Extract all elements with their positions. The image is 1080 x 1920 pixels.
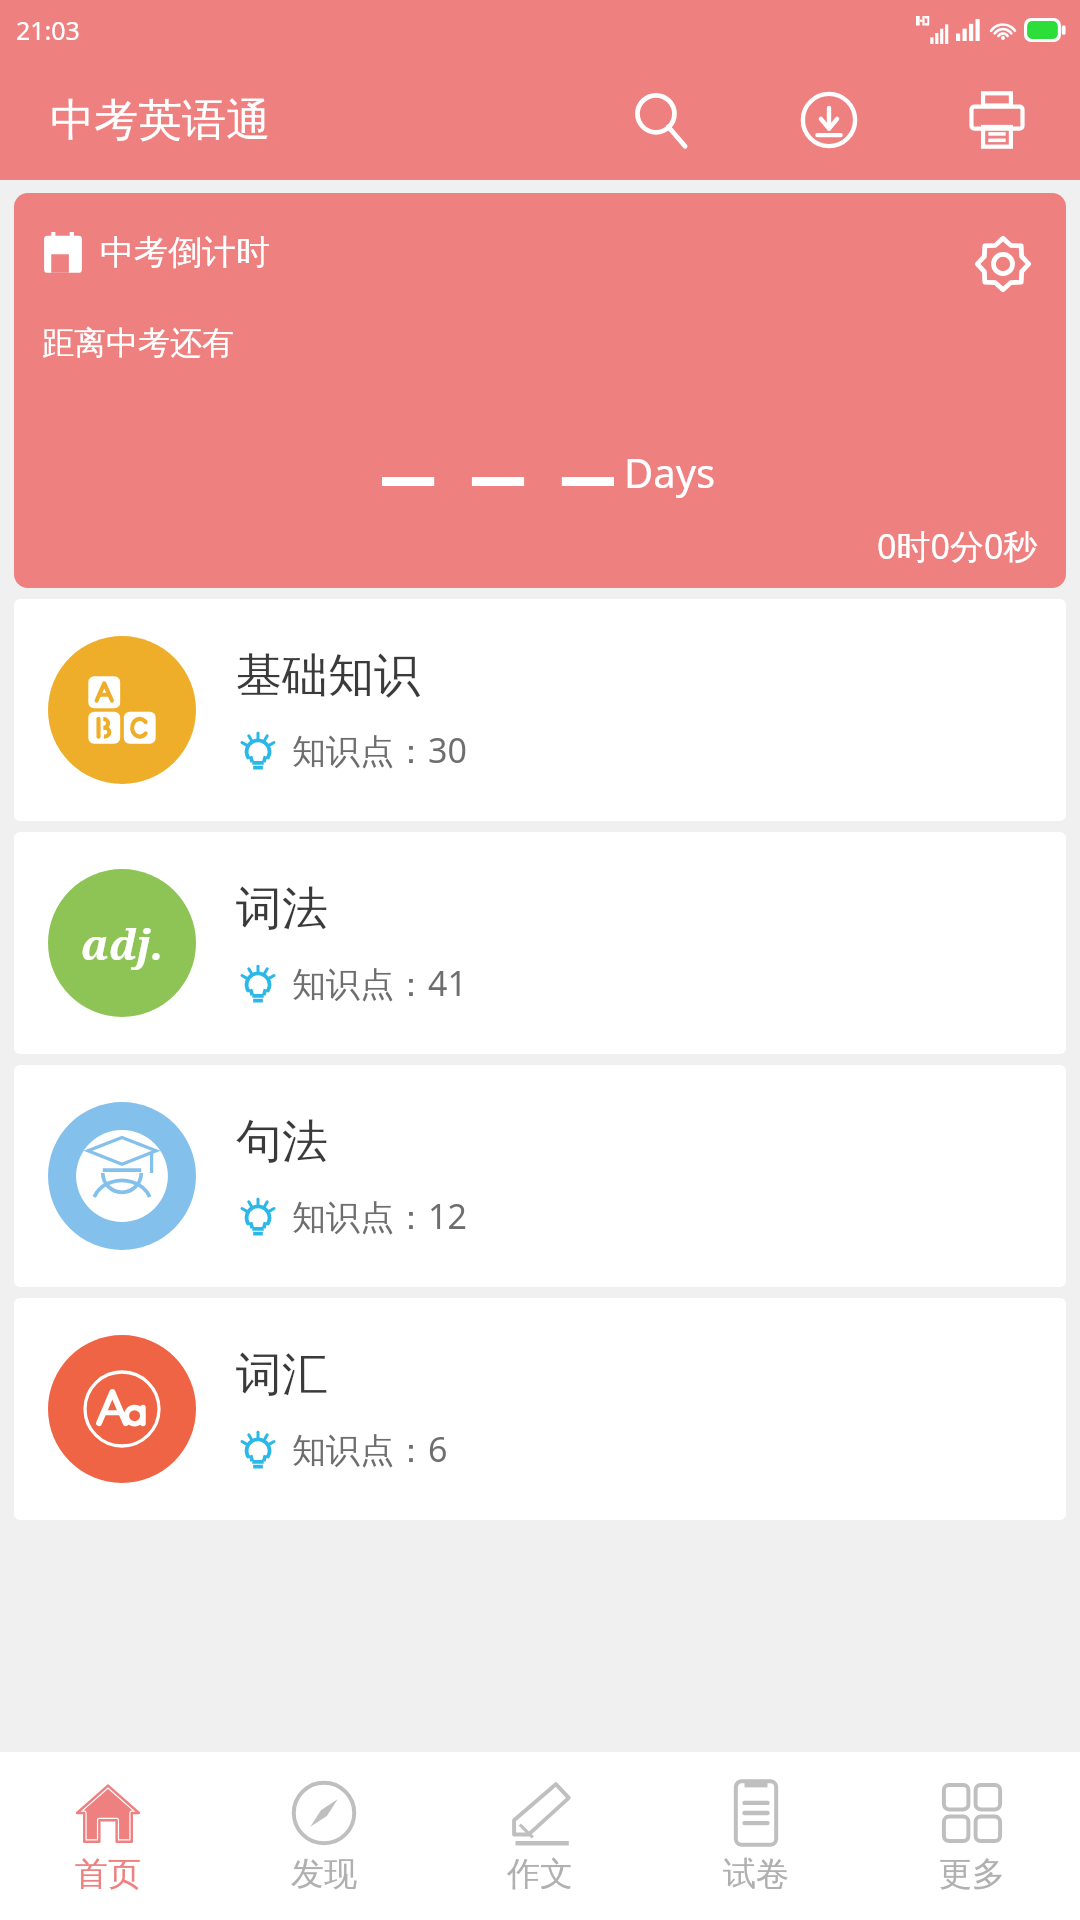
button[interactable]: 首页 — [0, 1752, 216, 1920]
staticText: 发现 — [291, 1853, 357, 1895]
button[interactable]: Settings — [964, 225, 1042, 303]
staticText: 词法 — [236, 880, 328, 938]
staticText: 首页 — [75, 1853, 141, 1895]
button[interactable]: Download — [786, 77, 872, 163]
staticText: Days — [624, 445, 716, 499]
staticText: 更多 — [939, 1853, 1005, 1895]
staticText: 中考倒计时 — [100, 231, 270, 274]
button[interactable]: 更多 — [864, 1752, 1080, 1920]
button[interactable]: Search — [618, 77, 704, 163]
staticText: adj. — [81, 915, 164, 972]
staticText: 知识点：30 — [292, 727, 467, 773]
button[interactable]: 中考倒计时 — [14, 193, 1066, 588]
button[interactable]: 试卷 — [648, 1752, 864, 1920]
staticText: 知识点：41 — [292, 960, 467, 1006]
staticText: 0时0分0秒 — [877, 523, 1038, 569]
staticText: 中考英语通 — [50, 93, 270, 148]
staticText: 试卷 — [723, 1853, 789, 1895]
button[interactable]: 句法 — [14, 1065, 1066, 1287]
button[interactable]: 基础知识 — [14, 599, 1066, 821]
staticText: 21:03 — [16, 13, 80, 47]
staticText: 基础知识 — [236, 647, 420, 705]
staticText: 作文 — [507, 1853, 573, 1895]
button[interactable]: Print — [954, 77, 1040, 163]
staticText: 知识点：12 — [292, 1193, 467, 1239]
button[interactable]: 作文 — [432, 1752, 648, 1920]
button[interactable]: 发现 — [216, 1752, 432, 1920]
staticText: 知识点：6 — [292, 1426, 448, 1472]
staticText: 词汇 — [236, 1346, 328, 1404]
staticText: 距离中考还有 — [42, 323, 234, 363]
button[interactable]: 词汇 — [14, 1298, 1066, 1520]
staticText: 句法 — [236, 1113, 328, 1171]
button[interactable]: 词法 — [14, 832, 1066, 1054]
